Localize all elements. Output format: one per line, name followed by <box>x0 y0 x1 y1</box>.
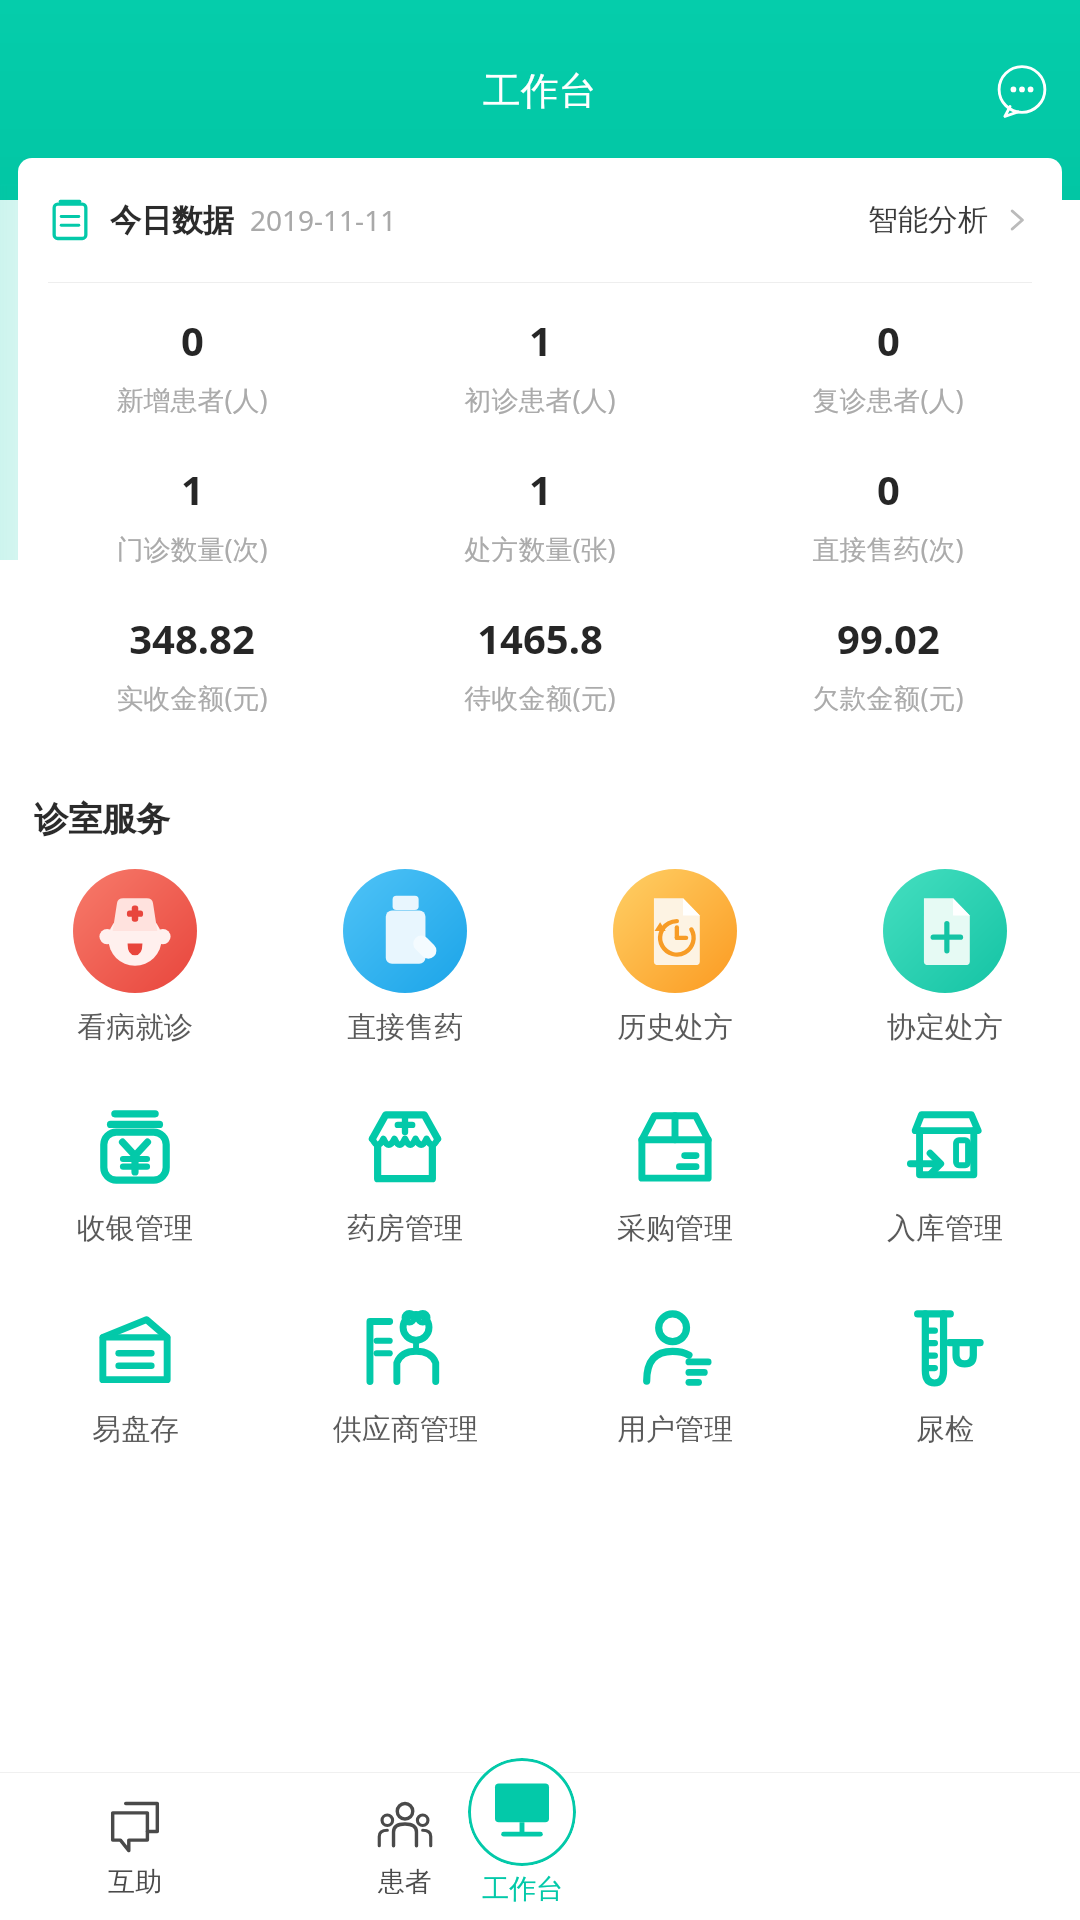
staticText: 1 <box>529 462 552 516</box>
button[interactable]: 入库管理 <box>810 1092 1080 1253</box>
button[interactable]: 用户管理 <box>540 1293 810 1454</box>
button[interactable]: 采购管理 <box>540 1092 810 1253</box>
staticText: 收银管理 <box>77 1210 193 1247</box>
button[interactable]: 今日数据 <box>18 158 1062 282</box>
button[interactable]: 协定处方 <box>810 863 1080 1052</box>
staticText: 复诊患者(人) <box>812 381 964 418</box>
staticText: 用户管理 <box>617 1411 733 1448</box>
button[interactable]: 供应商管理 <box>270 1293 540 1454</box>
staticText: 协定处方 <box>887 1009 1003 1046</box>
button[interactable]: 历史处方 <box>540 863 810 1052</box>
staticText: 处方数量(张) <box>464 530 616 567</box>
staticText: 历史处方 <box>617 1009 733 1046</box>
staticText: 尿检 <box>916 1411 974 1448</box>
staticText: 0 <box>877 462 900 516</box>
staticText: 门诊数量(次) <box>116 530 268 567</box>
staticText: 患者 <box>378 1865 432 1899</box>
button[interactable]: 看病就诊 <box>0 863 270 1052</box>
staticText: 诊室服务 <box>34 798 170 841</box>
button[interactable]: Messages <box>990 59 1054 123</box>
staticText: 待收金额(元) <box>464 679 616 716</box>
staticText: 易盘存 <box>92 1411 179 1448</box>
button[interactable]: 易盘存 <box>0 1293 270 1454</box>
staticText: 直接售药 <box>347 1009 463 1046</box>
staticText: 99.02 <box>837 611 940 665</box>
staticText: 药房管理 <box>347 1210 463 1247</box>
button[interactable]: 直接售药 <box>270 863 540 1052</box>
staticText: 1 <box>529 313 552 367</box>
staticText: 工作台 <box>482 1872 563 1906</box>
staticText: 2019-11-11 <box>250 201 397 239</box>
button[interactable]: 互助 <box>0 1772 270 1920</box>
button[interactable]: 药房管理 <box>270 1092 540 1253</box>
staticText: 新增患者(人) <box>116 381 268 418</box>
staticText: 今日数据 <box>110 201 234 240</box>
staticText: 看病就诊 <box>77 1009 193 1046</box>
staticText: 欠款金额(元) <box>812 679 964 716</box>
staticText: 采购管理 <box>617 1210 733 1247</box>
staticText: 0 <box>877 313 900 367</box>
staticText: 供应商管理 <box>333 1411 478 1448</box>
button[interactable]: 收银管理 <box>0 1092 270 1253</box>
staticText: 实收金额(元) <box>116 679 268 716</box>
staticText: 工作台 <box>483 67 597 115</box>
staticText: 0 <box>181 313 204 367</box>
staticText: 348.82 <box>129 611 255 665</box>
button[interactable]: 工作台 <box>468 1758 576 1906</box>
button[interactable]: 患者 <box>270 1772 540 1920</box>
staticText: 初诊患者(人) <box>464 381 616 418</box>
staticText: 1465.8 <box>477 611 603 665</box>
staticText: 互助 <box>108 1865 162 1899</box>
staticText: 入库管理 <box>887 1210 1003 1247</box>
staticText: 直接售药(次) <box>812 530 964 567</box>
staticText: 智能分析 <box>868 201 988 239</box>
staticText: 1 <box>181 462 204 516</box>
button[interactable]: 尿检 <box>810 1293 1080 1454</box>
